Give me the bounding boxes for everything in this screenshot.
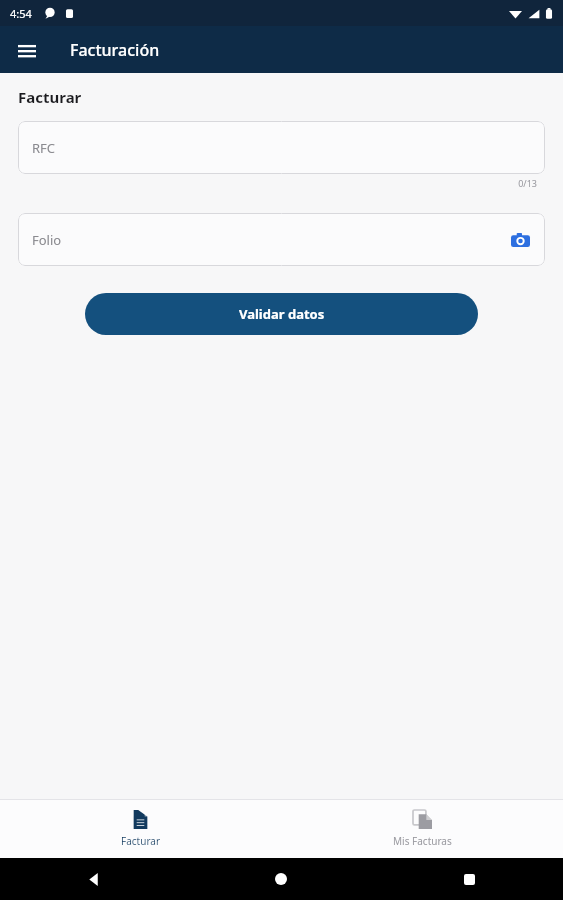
button[interactable]: Validar datos	[85, 293, 478, 335]
staticText: Mis Facturas	[393, 834, 452, 848]
button[interactable]: Recent apps	[449, 859, 489, 899]
staticText: 0/13	[0, 177, 537, 189]
staticText: 4:54	[10, 6, 32, 21]
button[interactable]: Escanear folio con la cámara	[505, 225, 535, 255]
staticText: Facturación	[70, 39, 160, 61]
button[interactable]: RFC	[18, 121, 545, 174]
staticText: Folio	[32, 231, 62, 249]
staticText: Facturar	[121, 834, 161, 848]
staticText: Facturar	[18, 87, 82, 107]
button[interactable]: Mis Facturas	[281, 800, 563, 858]
button[interactable]: Facturar	[0, 800, 281, 858]
button[interactable]: Back	[74, 859, 114, 899]
staticText: RFC	[32, 139, 56, 157]
staticText: Validar datos	[239, 305, 325, 323]
button[interactable]: Home	[261, 859, 301, 899]
button[interactable]: Open navigation menu	[10, 33, 44, 67]
button[interactable]: Folio	[18, 213, 545, 266]
